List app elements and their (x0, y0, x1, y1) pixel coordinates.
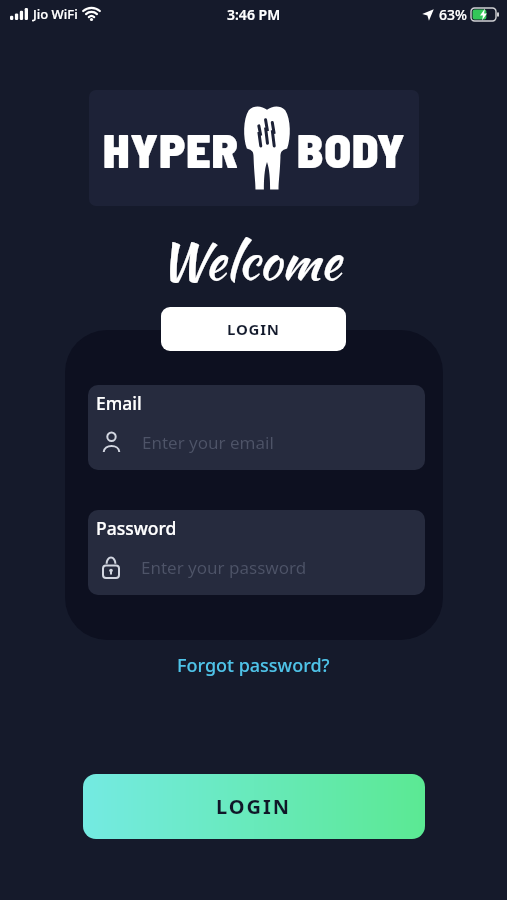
button[interactable]: LOGIN (83, 774, 425, 839)
button[interactable]: Email (88, 385, 425, 470)
staticText: LOGIN (216, 793, 292, 820)
button[interactable]: Password (88, 510, 425, 595)
staticText: BODY (297, 120, 406, 178)
staticText: LOGIN (227, 319, 280, 339)
staticText: Jio WiFi (33, 5, 78, 23)
staticText: HYPER (103, 120, 240, 178)
button[interactable]: Forgot password? (177, 653, 330, 678)
staticText: 3:46 PM (227, 5, 281, 24)
staticText: 63% (439, 5, 467, 24)
staticText: Forgot password? (177, 653, 330, 678)
button[interactable]: LOGIN (161, 307, 346, 351)
staticText: Email (96, 391, 142, 415)
staticText: Password (96, 516, 177, 540)
staticText: Welcome (159, 224, 341, 298)
staticText: Enter your password (141, 556, 307, 579)
staticText: Enter your email (142, 431, 274, 454)
